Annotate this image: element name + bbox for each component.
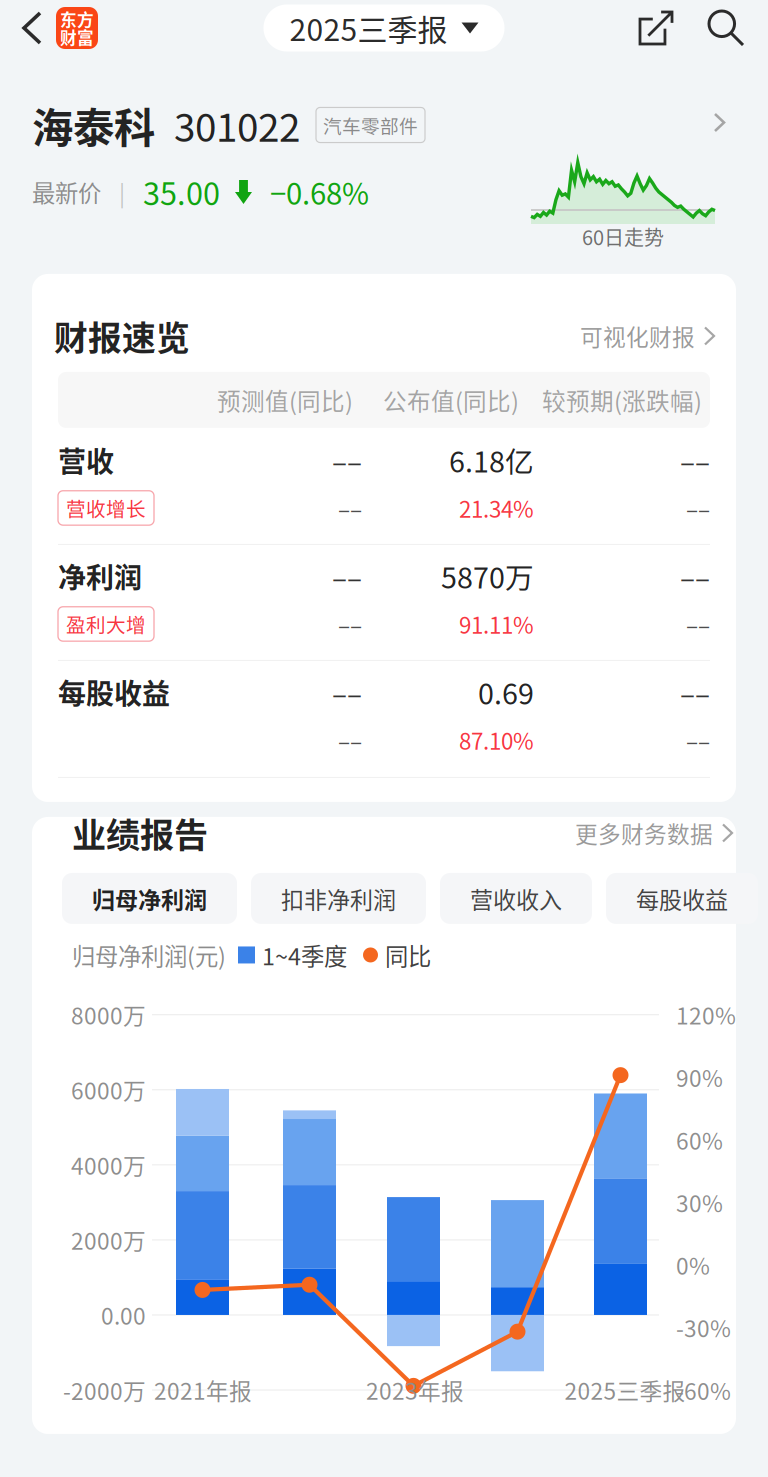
button[interactable]: 每股收益	[606, 873, 758, 924]
staticText: 预测值(同比)	[217, 383, 353, 417]
staticText: 120%	[676, 998, 736, 1031]
staticText: 2021年报	[154, 1373, 252, 1406]
staticText: 0%	[676, 1248, 710, 1281]
staticText: 盈利大增	[66, 610, 146, 638]
staticText: 可视化财报	[580, 319, 695, 352]
button[interactable]: Search	[704, 6, 748, 50]
staticText: 4000万	[71, 1148, 146, 1181]
staticText: -2000万	[63, 1374, 146, 1406]
staticText: ––	[332, 672, 362, 712]
staticText: 2023年报	[366, 1373, 464, 1406]
staticText: 营收增长	[66, 494, 146, 522]
staticText: 8000万	[71, 998, 146, 1031]
staticText: 营收收入	[470, 882, 562, 915]
staticText: 35.00	[143, 170, 220, 214]
staticText: ––	[338, 607, 362, 640]
button[interactable]: 归母净利润	[62, 873, 237, 924]
staticText: 业绩报告	[72, 808, 208, 858]
button[interactable]: 更多财务数据	[575, 816, 732, 849]
button[interactable]: 可视化财报	[580, 319, 714, 352]
staticText: 0.69	[478, 671, 534, 713]
staticText: ––	[332, 440, 362, 480]
button[interactable]: 2025三季报	[263, 4, 504, 51]
staticText: 归母净利润(元)	[72, 938, 226, 972]
staticText: 较预期(涨跌幅)	[542, 383, 702, 417]
staticText: ––	[686, 723, 710, 756]
staticText: 30%	[676, 1186, 723, 1219]
button[interactable]: Back	[0, 0, 114, 56]
staticText: 东方	[60, 7, 94, 31]
staticText: ––	[680, 440, 710, 480]
staticText: 60日走势	[582, 222, 664, 251]
staticText: |	[119, 176, 125, 208]
staticText: 每股收益	[58, 672, 170, 712]
staticText: 60%	[676, 1123, 723, 1156]
staticText: ––	[686, 607, 710, 640]
staticText: 汽车零部件	[323, 111, 418, 138]
staticText: 营收	[58, 440, 114, 480]
staticText: 扣非净利润	[281, 882, 396, 915]
staticText: 5870万	[441, 555, 534, 597]
button[interactable]: 扣非净利润	[251, 873, 426, 924]
staticText: -30%	[676, 1311, 731, 1344]
staticText: 更多财务数据	[575, 816, 713, 849]
staticText: 净利润	[58, 556, 142, 596]
staticText: 6.18亿	[449, 439, 534, 481]
staticText: 301022	[174, 97, 300, 153]
staticText: ––	[686, 491, 710, 524]
staticText: 每股收益	[636, 882, 728, 915]
staticText: 2025三季报	[289, 6, 447, 50]
staticText: 财报速览	[54, 311, 190, 360]
button[interactable]: 营收收入	[440, 873, 592, 924]
staticText: 2000万	[71, 1223, 146, 1256]
staticText: 21.34%	[459, 492, 534, 524]
staticText: 公布值(同比)	[383, 383, 519, 417]
staticText: −0.68%	[270, 171, 369, 213]
staticText: 90%	[676, 1061, 723, 1094]
staticText: 归母净利润	[92, 882, 207, 915]
staticText: ––	[338, 491, 362, 524]
staticText: 6000万	[71, 1073, 146, 1106]
staticText: 财富	[60, 25, 94, 49]
staticText: 91.11%	[459, 608, 534, 640]
staticText: 87.10%	[459, 724, 534, 756]
staticText: ––	[680, 556, 710, 596]
staticText: 同比	[385, 938, 431, 972]
staticText: 海泰科	[32, 95, 155, 155]
staticText: -60%	[676, 1374, 731, 1406]
staticText: ––	[680, 672, 710, 712]
staticText: ––	[332, 556, 362, 596]
button[interactable]: 海泰科	[0, 98, 768, 251]
staticText: 2025三季报	[564, 1373, 685, 1406]
staticText: 1~4季度	[262, 938, 347, 972]
staticText: ––	[338, 723, 362, 756]
button[interactable]: Share	[634, 6, 678, 50]
staticText: 最新价	[32, 175, 101, 209]
staticText: 0.00	[101, 1298, 146, 1331]
